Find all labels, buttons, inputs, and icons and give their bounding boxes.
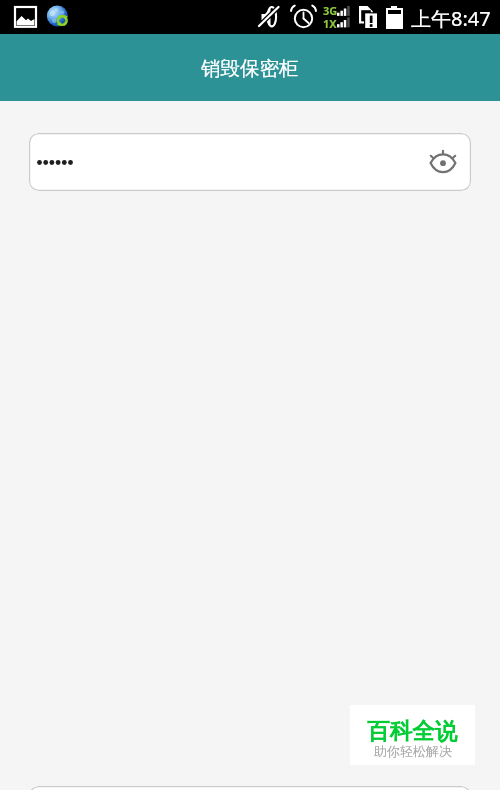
button[interactable]: Password field (29, 133, 471, 191)
staticText: 1X (323, 16, 337, 31)
staticText: 上午8:47 (411, 5, 491, 32)
staticText: 助你轻松解决 (374, 743, 452, 759)
button[interactable]: Password field (29, 786, 471, 790)
staticText: 3G (323, 3, 338, 18)
button[interactable]: Show password (428, 148, 458, 178)
staticText: 百科全说 (367, 717, 458, 745)
staticText: 销毁保密柜 (201, 56, 299, 81)
